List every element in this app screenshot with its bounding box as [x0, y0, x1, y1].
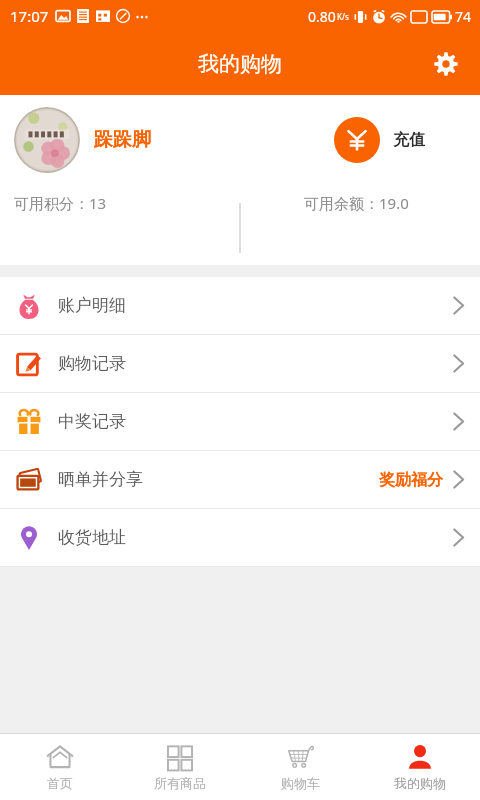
- button[interactable]: 收货地址: [0, 509, 480, 566]
- button[interactable]: 账户明细: [0, 277, 480, 334]
- button[interactable]: 购物车: [240, 734, 360, 800]
- button[interactable]: Settings: [424, 42, 468, 86]
- staticText: 可用积分：13: [14, 193, 107, 213]
- staticText: 账户明细: [58, 295, 126, 316]
- button[interactable]: 所有商品: [120, 734, 240, 800]
- staticText: 可用余额：19.0: [304, 193, 409, 213]
- staticText: 17:07: [10, 6, 49, 26]
- staticText: 收货地址: [58, 527, 126, 548]
- button[interactable]: 充值: [334, 117, 425, 163]
- staticText: 奖励福分: [379, 470, 443, 490]
- staticText: 晒单并分享: [58, 469, 143, 490]
- staticText: 购物车: [281, 775, 320, 791]
- staticText: 所有商品: [154, 775, 206, 791]
- staticText: 0.80: [308, 7, 336, 26]
- staticText: 我的购物: [394, 775, 446, 791]
- button[interactable]: 中奖记录: [0, 393, 480, 450]
- staticText: 我的购物: [198, 51, 282, 77]
- staticText: 中奖记录: [58, 411, 126, 432]
- button[interactable]: 购物记录: [0, 335, 480, 392]
- staticText: 跺跺脚: [94, 128, 151, 152]
- staticText: 首页: [47, 775, 73, 791]
- button[interactable]: 跺跺脚: [14, 107, 151, 173]
- staticText: K/s: [337, 11, 349, 22]
- staticText: 充值: [393, 130, 425, 150]
- button[interactable]: 晒单并分享: [0, 451, 480, 508]
- button[interactable]: 我的购物: [360, 734, 480, 800]
- staticText: 购物记录: [58, 353, 126, 374]
- button[interactable]: 首页: [0, 734, 120, 800]
- staticText: 74: [455, 7, 472, 26]
